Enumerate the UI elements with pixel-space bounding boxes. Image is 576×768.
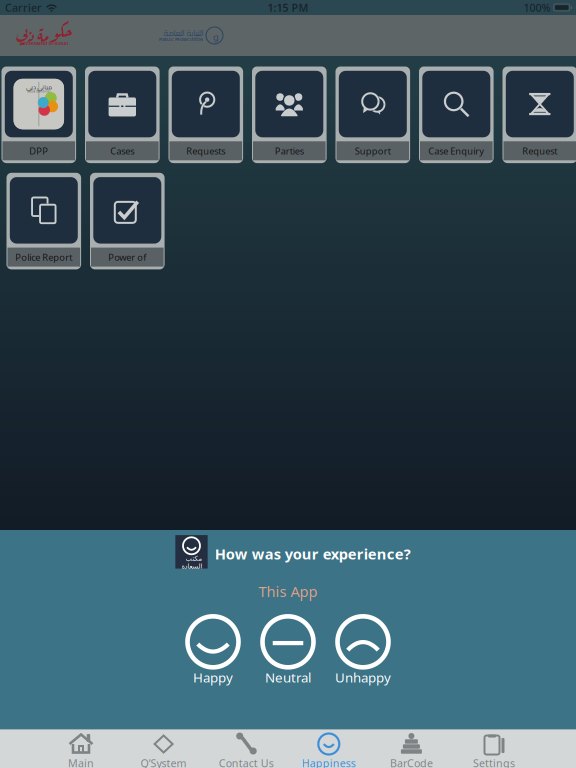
button[interactable]: Case Enquiry [419, 66, 494, 163]
staticText: النيابة العامة [163, 25, 203, 41]
button[interactable]: Requests [168, 66, 243, 163]
staticText: BarCode [390, 756, 433, 768]
button[interactable]: مباني دبي [1, 66, 76, 163]
button[interactable]: Settings [453, 730, 535, 768]
staticText: Happy [193, 669, 233, 686]
staticText: Support [355, 145, 391, 157]
staticText: Request [522, 145, 557, 157]
staticText: مكتب السعادة [181, 555, 202, 570]
staticText: Cases [110, 145, 134, 157]
button[interactable]: Power of [90, 173, 165, 269]
staticText: Settings [473, 756, 515, 768]
button[interactable]: Cases [85, 66, 160, 163]
staticText: Dubai Buildings [27, 90, 50, 93]
staticText: Parties [275, 145, 304, 157]
staticText: Neutral [265, 669, 311, 686]
button[interactable]: Police Report [6, 173, 81, 269]
staticText: Q'System [141, 756, 187, 768]
button[interactable]: Q'System [122, 730, 205, 768]
staticText: 1:15 PM [267, 0, 308, 15]
staticText: حكومة دبي [16, 19, 72, 47]
staticText: Power of [108, 251, 146, 263]
button[interactable]: Request [502, 66, 576, 163]
button[interactable]: BarCode [370, 730, 453, 768]
staticText: Unhappy [335, 669, 391, 686]
staticText: Carrier [5, 0, 42, 15]
button[interactable]: Unhappy [325, 614, 400, 686]
staticText: PUBLIC PROSECUTION [159, 37, 203, 42]
staticText: GOVERNMENT OF DUBAI [19, 41, 68, 46]
staticText: 100% [523, 0, 550, 15]
button[interactable]: Main [40, 730, 122, 768]
staticText: مباني دبي [26, 82, 52, 93]
staticText: Case Enquiry [428, 145, 484, 157]
staticText: Requests [186, 145, 225, 157]
button[interactable]: Happiness [287, 730, 370, 768]
staticText: Contact Us [219, 756, 274, 768]
staticText: Happiness [302, 756, 356, 768]
button[interactable]: Parties [252, 66, 327, 163]
staticText: Police Report [15, 251, 72, 263]
button[interactable]: Neutral [250, 614, 325, 686]
button[interactable]: Support [335, 66, 410, 163]
staticText: How was your experience? [215, 544, 411, 564]
staticText: This App [258, 582, 317, 601]
staticText: DPP [29, 145, 48, 157]
button[interactable]: Happy [175, 614, 250, 686]
staticText: Main [68, 756, 94, 768]
button[interactable]: Contact Us [205, 730, 287, 768]
staticText: و [212, 26, 218, 46]
